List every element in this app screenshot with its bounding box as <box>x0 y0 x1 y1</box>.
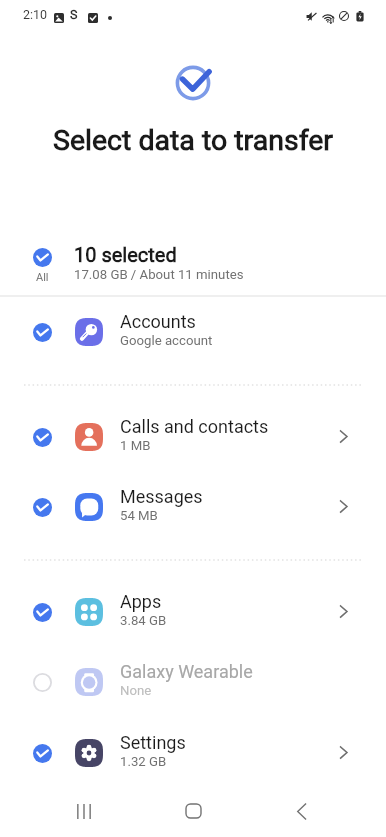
staticText: Settings <box>120 732 186 753</box>
staticText: S <box>70 7 78 22</box>
staticText: 2:10 <box>23 7 48 22</box>
staticText: Calls and contacts <box>120 416 269 437</box>
button[interactable]: All <box>33 248 52 284</box>
button[interactable]: Apps <box>0 577 386 647</box>
button[interactable]: Accounts <box>0 297 386 367</box>
staticText: 1.32 GB <box>120 754 167 769</box>
staticText: Messages <box>120 486 203 507</box>
button[interactable]: Home <box>169 788 217 834</box>
staticText: Apps <box>120 591 162 612</box>
staticText: 17.08 GB / About 11 minutes <box>74 267 244 282</box>
staticText: 54 MB <box>120 508 158 523</box>
staticText: Galaxy Wearable <box>120 661 253 682</box>
button[interactable]: Back <box>277 788 325 834</box>
button[interactable]: Calls and contacts <box>0 402 386 472</box>
staticText: 1 MB <box>120 438 151 453</box>
staticText: Select data to transfer <box>0 124 386 157</box>
button[interactable]: Recent apps <box>60 788 108 834</box>
staticText: None <box>120 683 152 698</box>
staticText: All <box>36 271 49 284</box>
staticText: 3.84 GB <box>120 613 167 628</box>
staticText: 10 selected <box>74 243 177 266</box>
staticText: Accounts <box>120 311 196 332</box>
staticText: Google account <box>120 333 213 348</box>
button[interactable]: Galaxy Wearable <box>0 647 386 717</box>
button[interactable]: Messages <box>0 472 386 542</box>
button[interactable]: Settings <box>0 718 386 788</box>
